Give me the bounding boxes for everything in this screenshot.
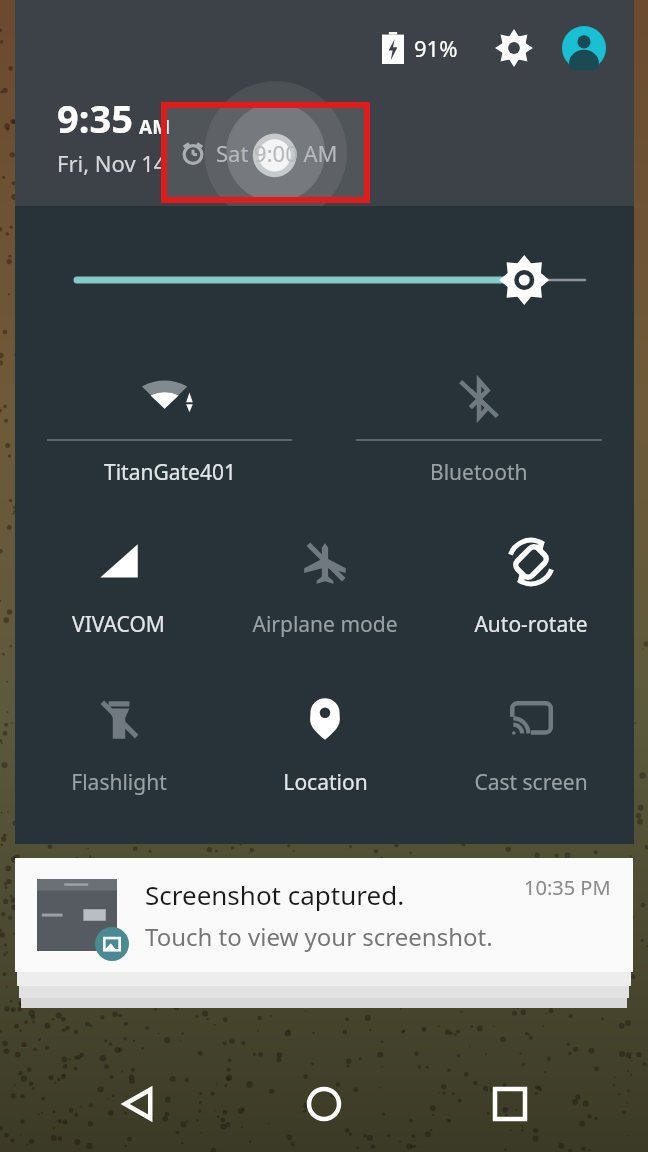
button[interactable]: Settings xyxy=(490,24,538,72)
button[interactable]: Location xyxy=(222,672,428,830)
staticText: Bluetooth xyxy=(430,458,528,487)
button[interactable]: Flashlight xyxy=(15,672,222,830)
button[interactable]: Back xyxy=(90,1056,186,1152)
button[interactable]: User profile xyxy=(560,24,608,72)
button[interactable]: TitanGate401 xyxy=(15,354,324,514)
staticText: Flashlight xyxy=(71,768,167,797)
button[interactable]: Home xyxy=(276,1056,372,1152)
staticText: 9:35 xyxy=(57,92,133,144)
staticText: Airplane mode xyxy=(252,610,398,639)
staticText: Sat 9:00 AM xyxy=(216,138,338,168)
button[interactable]: Brightness xyxy=(15,250,634,310)
staticText: Auto-rotate xyxy=(474,610,588,639)
staticText: Location xyxy=(283,768,368,797)
button[interactable]: Airplane mode xyxy=(222,514,428,672)
button[interactable]: Bluetooth xyxy=(324,354,634,514)
staticText: 10:35 PM xyxy=(524,874,611,901)
button[interactable]: VIVACOM xyxy=(15,514,222,672)
button[interactable]: Auto-rotate xyxy=(428,514,634,672)
staticText: Fri, Nov 14 xyxy=(57,148,167,178)
staticText: TitanGate401 xyxy=(104,458,236,487)
button[interactable]: Cast screen xyxy=(428,672,634,830)
button[interactable]: Recents xyxy=(462,1056,558,1152)
staticText: Cast screen xyxy=(474,768,588,797)
staticText: VIVACOM xyxy=(72,610,165,639)
staticText: Touch to view your screenshot. xyxy=(145,920,493,953)
staticText: Screenshot captured. xyxy=(145,877,405,912)
button[interactable]: Alarm Sat 9:00 AM xyxy=(164,105,367,200)
staticText: 91% xyxy=(414,33,458,63)
staticText: AM xyxy=(139,114,171,140)
button[interactable]: Screenshot captured. xyxy=(15,858,633,972)
